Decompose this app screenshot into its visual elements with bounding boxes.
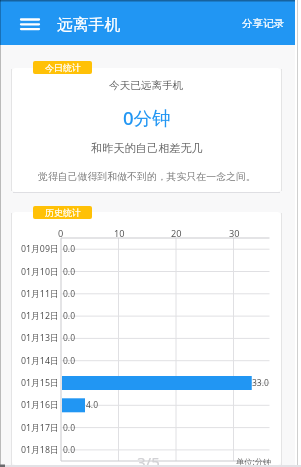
staticText: 和昨天的自己相差无几 — [91, 141, 203, 155]
staticText: 01月16日 — [21, 399, 59, 411]
staticText: 20 — [171, 227, 182, 240]
staticText: 历史统计 — [45, 207, 81, 218]
staticText: 01月14日 — [21, 355, 59, 367]
button[interactable] — [12, 212, 281, 465]
staticText: 远离手机 — [57, 15, 121, 34]
staticText: 0.0 — [63, 444, 76, 456]
staticText: 觉得自己做得到和做不到的，其实只在一念之间。 — [38, 170, 256, 182]
staticText: 01月17日 — [21, 422, 59, 434]
button[interactable] — [12, 68, 281, 192]
staticText: 单位:分钟 — [236, 456, 272, 467]
staticText: 0.0 — [63, 310, 76, 322]
staticText: 33.0 — [252, 377, 269, 389]
staticText: 0.0 — [63, 332, 76, 344]
staticText: 0.0 — [63, 243, 76, 255]
button[interactable] — [14, 10, 46, 38]
staticText: 01月11日 — [21, 288, 59, 300]
staticText: 0.0 — [63, 266, 76, 278]
staticText: 01月09日 — [21, 243, 59, 255]
staticText: 30 — [229, 227, 240, 240]
staticText: 0.0 — [63, 355, 76, 367]
staticText: 10 — [114, 227, 125, 240]
staticText: 01月12日 — [21, 310, 59, 322]
staticText: 今日统计 — [45, 62, 81, 73]
staticText: 分享记录 — [242, 17, 284, 30]
staticText: 0 — [58, 227, 64, 240]
staticText: 今天已远离手机 — [109, 79, 184, 92]
staticText: 4.0 — [86, 399, 99, 411]
staticText: 01月15日 — [21, 377, 59, 389]
staticText: 0.0 — [63, 288, 76, 300]
staticText: 3/5 — [137, 452, 160, 467]
staticText: 0分钟 — [123, 105, 171, 130]
staticText: 01月13日 — [21, 332, 59, 344]
staticText: 0.0 — [63, 422, 76, 434]
staticText: 01月10日 — [21, 266, 59, 278]
staticText: 01月18日 — [21, 444, 59, 456]
button[interactable]: 分享记录 — [0, 0, 50, 18]
